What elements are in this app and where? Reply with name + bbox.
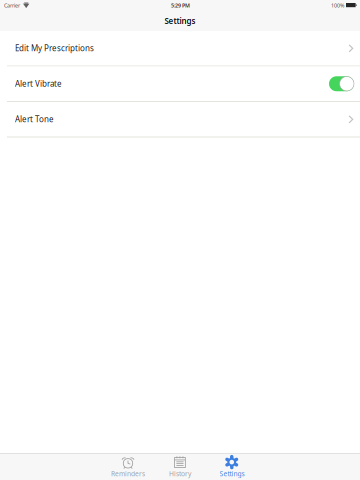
staticText: 5:29 PM — [171, 2, 190, 9]
staticText: Carrier — [4, 2, 20, 9]
staticText: Reminders — [111, 469, 145, 478]
button[interactable]: Alert Tone — [7, 102, 360, 136]
button[interactable]: History — [155, 454, 205, 479]
staticText: 100% — [331, 2, 344, 9]
button[interactable]: Edit My Prescriptions — [7, 31, 360, 65]
staticText: Alert Vibrate — [15, 78, 62, 89]
staticText: Edit My Prescriptions — [15, 43, 94, 53]
staticText: Alert Tone — [15, 114, 54, 124]
staticText: History — [169, 469, 191, 478]
staticText: Settings — [219, 469, 244, 478]
button[interactable]: Settings — [207, 454, 257, 479]
button[interactable]: Alert Vibrate — [7, 66, 360, 101]
staticText: Settings — [164, 16, 195, 26]
button[interactable]: Reminders — [103, 454, 153, 479]
